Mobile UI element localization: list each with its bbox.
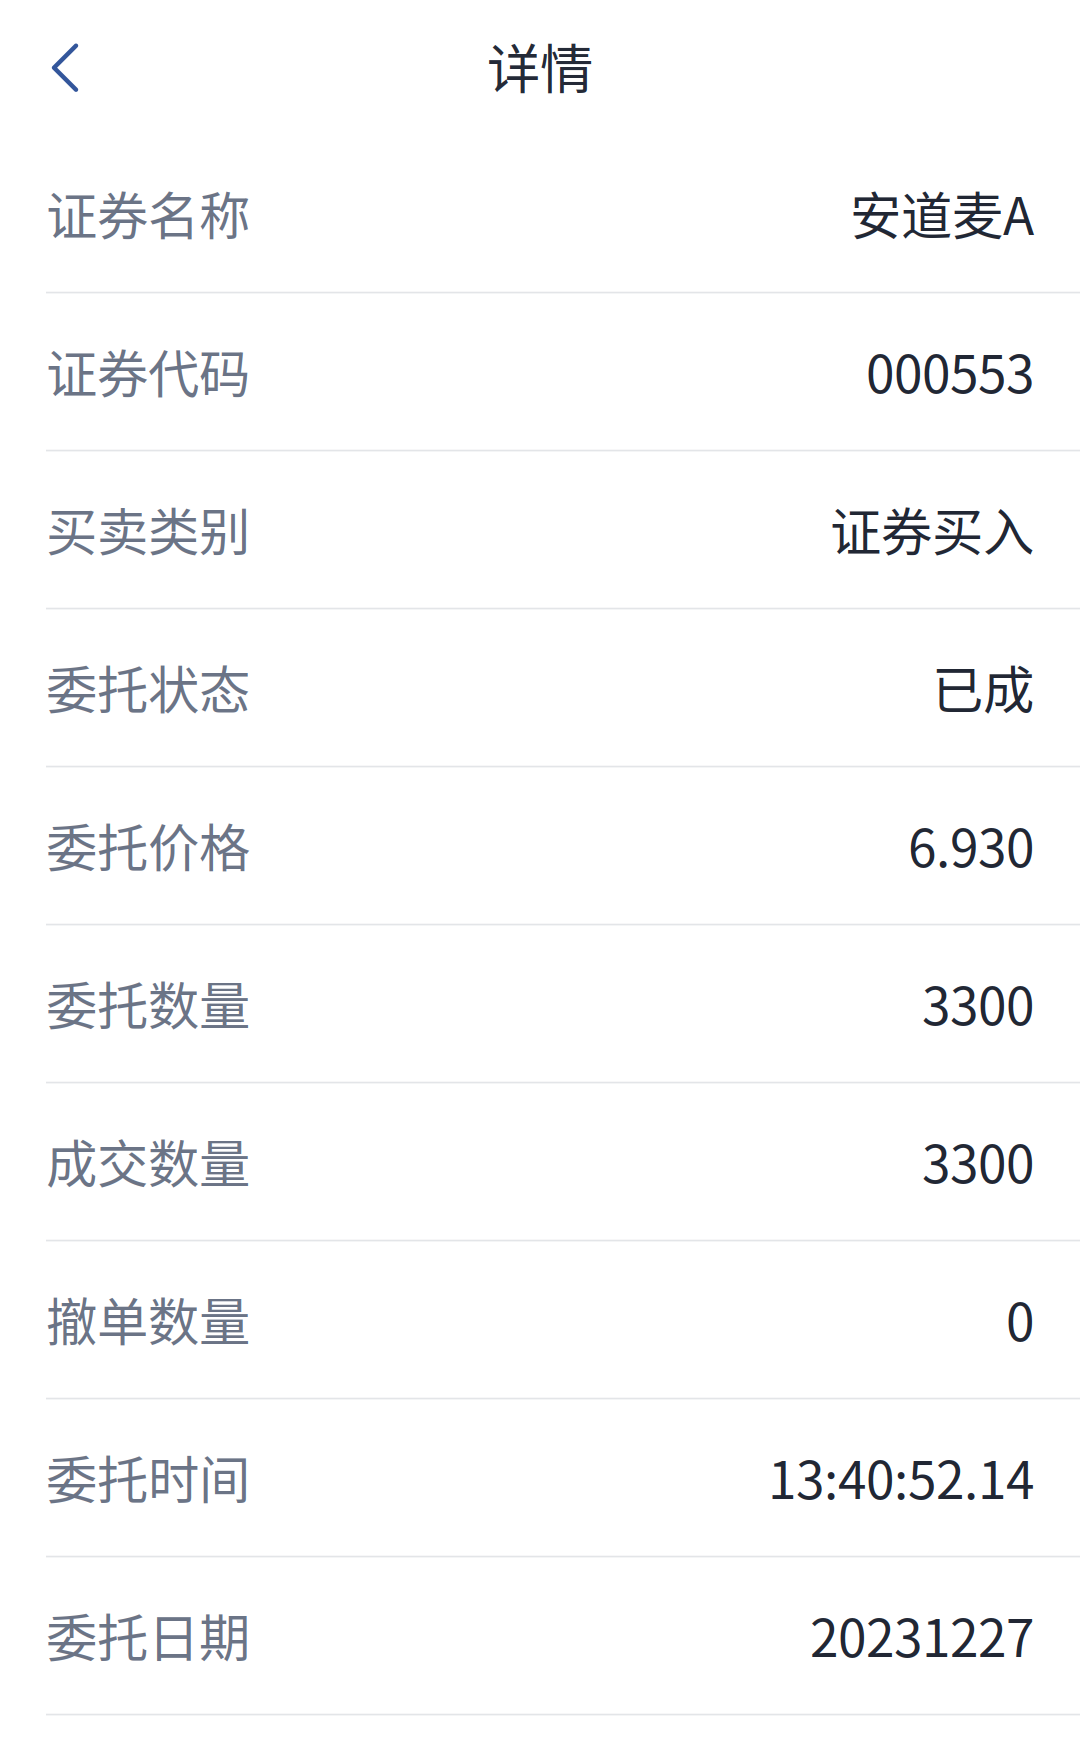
staticText: 0 — [1006, 1281, 1034, 1356]
staticText: 委托状态 — [46, 649, 250, 724]
staticText: 撤单数量 — [46, 1281, 250, 1356]
button[interactable]: 委托数量 — [0, 925, 1080, 1083]
button[interactable]: 证券名称 — [0, 135, 1080, 293]
button[interactable]: 返回 — [0, 0, 105, 135]
staticText: 买卖类别 — [46, 491, 250, 566]
button[interactable]: 委托价格 — [0, 767, 1080, 925]
button[interactable]: 委托时间 — [0, 1399, 1080, 1557]
staticText: 证券名称 — [46, 175, 250, 250]
staticText: 安道麦A — [850, 175, 1034, 250]
staticText: 000553 — [866, 333, 1034, 408]
button[interactable]: 证券代码 — [0, 293, 1080, 451]
staticText: 详情 — [487, 27, 593, 104]
staticText: 3300 — [922, 1123, 1034, 1198]
staticText: 20231227 — [810, 1597, 1034, 1672]
staticText: 证券代码 — [46, 333, 250, 408]
staticText: 成交数量 — [46, 1123, 250, 1198]
staticText: 已成 — [932, 649, 1034, 724]
button[interactable]: 委托状态 — [0, 609, 1080, 767]
staticText: 委托日期 — [46, 1597, 250, 1672]
button[interactable]: 成交数量 — [0, 1083, 1080, 1241]
staticText: 3300 — [922, 965, 1034, 1040]
staticText: 委托时间 — [46, 1439, 250, 1514]
button[interactable]: 买卖类别 — [0, 451, 1080, 609]
button[interactable]: 撤单数量 — [0, 1241, 1080, 1399]
staticText: 证券买入 — [830, 491, 1034, 566]
staticText: 6.930 — [908, 807, 1034, 882]
button[interactable]: 委托日期 — [0, 1557, 1080, 1715]
staticText: 13:40:52.14 — [768, 1439, 1034, 1514]
staticText: 委托价格 — [46, 807, 250, 882]
staticText: 委托数量 — [46, 965, 250, 1040]
